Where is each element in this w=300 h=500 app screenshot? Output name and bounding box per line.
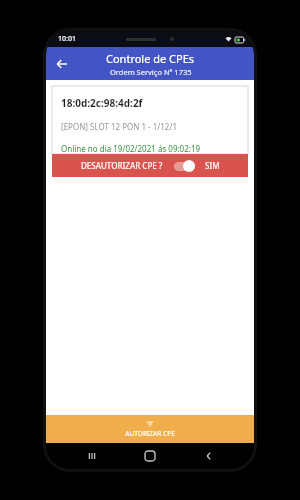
staticText: SIM <box>205 160 220 171</box>
staticText: Controle de CPEs <box>106 51 195 66</box>
button[interactable]: DESAUTORIZAR CPE ? <box>52 154 248 177</box>
staticText: AUTORIZAR CPE <box>125 429 175 438</box>
button[interactable]: Home <box>137 443 163 469</box>
staticText: 18:0d:2c:98:4d:2f <box>61 96 143 110</box>
button[interactable]: Back <box>196 443 222 469</box>
button[interactable]: AUTORIZAR CPE <box>46 415 254 443</box>
staticText: Online no dia 19/02/2021 ás 09:02:19 <box>61 143 201 154</box>
staticText: [EPON] SLOT 12 PON 1 - 1/12/1 <box>61 121 177 132</box>
staticText: 10:01 <box>58 34 76 44</box>
button[interactable]: Recents <box>79 443 105 469</box>
staticText: DESAUTORIZAR CPE ? <box>81 160 163 171</box>
staticText: Ordem Serviço Nº 1735 <box>110 67 192 77</box>
button[interactable]: Back <box>49 51 75 77</box>
